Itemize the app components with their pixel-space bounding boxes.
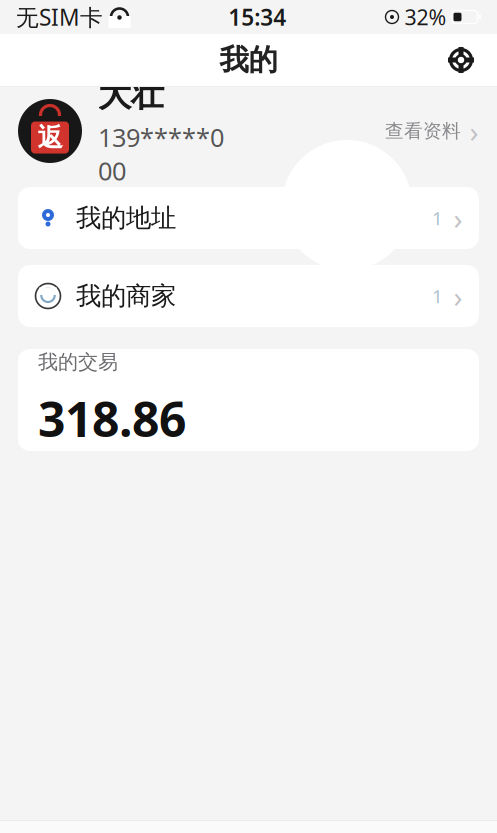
staticText: › bbox=[469, 111, 478, 150]
staticText: › bbox=[453, 198, 462, 237]
button[interactable]: 我的地址 bbox=[18, 187, 479, 249]
staticText: 无SIM卡 bbox=[16, 2, 103, 32]
staticText: 大壮 bbox=[98, 74, 164, 115]
button[interactable]: 返 bbox=[0, 87, 497, 175]
button[interactable]: 设置 bbox=[437, 36, 485, 84]
button[interactable]: 我的交易 bbox=[18, 349, 479, 451]
button[interactable]: 我的商家 bbox=[18, 265, 479, 327]
staticText: 32% bbox=[404, 3, 446, 31]
staticText: › bbox=[453, 276, 462, 315]
staticText: 查看资料 bbox=[385, 119, 461, 142]
staticText: 返 bbox=[37, 122, 62, 153]
staticText: 我的 bbox=[219, 42, 277, 78]
staticText: 1 bbox=[432, 206, 443, 230]
staticText: 我的交易 bbox=[38, 350, 118, 374]
staticText: 1 bbox=[432, 284, 443, 308]
staticText: 15:34 bbox=[228, 2, 286, 32]
staticText: 139*****000 bbox=[98, 120, 224, 188]
staticText: 我的商家 bbox=[76, 280, 176, 311]
staticText: 318.86 bbox=[38, 386, 186, 450]
staticText: 我的地址 bbox=[76, 202, 176, 233]
